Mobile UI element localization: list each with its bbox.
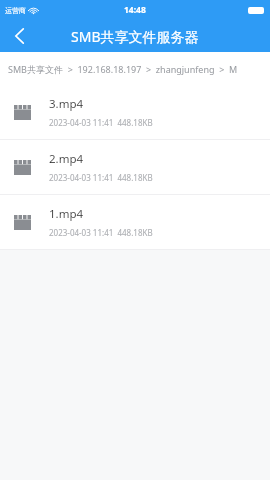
button[interactable]: 1.mp4 <box>0 195 270 249</box>
staticText: 1.mp4 <box>49 206 84 222</box>
staticText: 2023-04-03 11:41 448.18KB <box>49 117 153 128</box>
button[interactable]: SMB共享文件 > 192.168.18.197 > zhangjunfeng … <box>0 52 270 85</box>
staticText: SMB共享文件 > 192.168.18.197 > zhangjunfeng … <box>8 63 238 75</box>
staticText: 2.mp4 <box>49 151 84 167</box>
staticText: 3.mp4 <box>49 96 84 112</box>
staticText: 14:48 <box>124 4 146 16</box>
staticText: 运营商 <box>5 6 26 15</box>
button[interactable]: 3.mp4 <box>0 85 270 139</box>
staticText: 2023-04-03 11:41 448.18KB <box>49 227 153 238</box>
button[interactable]: 2.mp4 <box>0 140 270 194</box>
staticText: SMB共享文件服务器 <box>71 27 199 46</box>
button[interactable]: Back <box>0 20 38 52</box>
staticText: 2023-04-03 11:41 448.18KB <box>49 172 153 183</box>
